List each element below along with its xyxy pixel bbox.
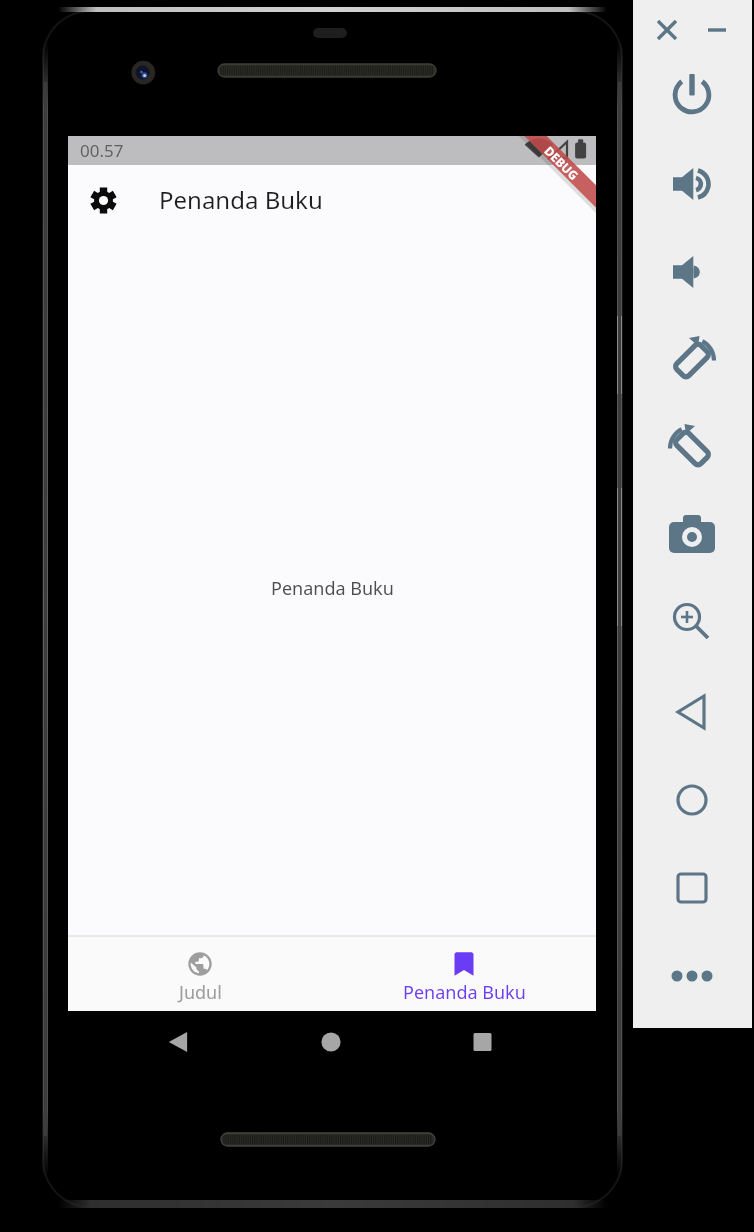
button[interactable]: Volume up	[659, 166, 695, 202]
button[interactable]: Judul	[68, 935, 332, 1011]
button[interactable]: Zoom	[659, 605, 695, 641]
button[interactable]: Home	[659, 782, 695, 818]
staticText: DEBUG	[541, 142, 582, 183]
button[interactable]: Rotate left	[659, 341, 695, 377]
button[interactable]: Rotate right	[659, 429, 695, 465]
button[interactable]: Penanda Buku	[332, 935, 596, 1011]
button[interactable]: Close	[659, 12, 695, 48]
staticText: Penanda Buku	[403, 980, 526, 1005]
button[interactable]: Screenshot	[659, 516, 695, 552]
button[interactable]: Volume down	[659, 254, 695, 290]
button[interactable]: Power	[659, 77, 695, 113]
staticText: 00.57	[80, 139, 124, 162]
button[interactable]: More	[659, 958, 695, 994]
button[interactable]: Back	[659, 694, 695, 730]
staticText: Penanda Buku	[271, 576, 394, 601]
staticText: Judul	[179, 980, 222, 1005]
staticText: Penanda Buku	[159, 183, 323, 216]
button[interactable]: Minimise	[699, 12, 735, 48]
button[interactable]: Overview	[659, 870, 695, 906]
button[interactable]: Settings	[79, 176, 127, 224]
